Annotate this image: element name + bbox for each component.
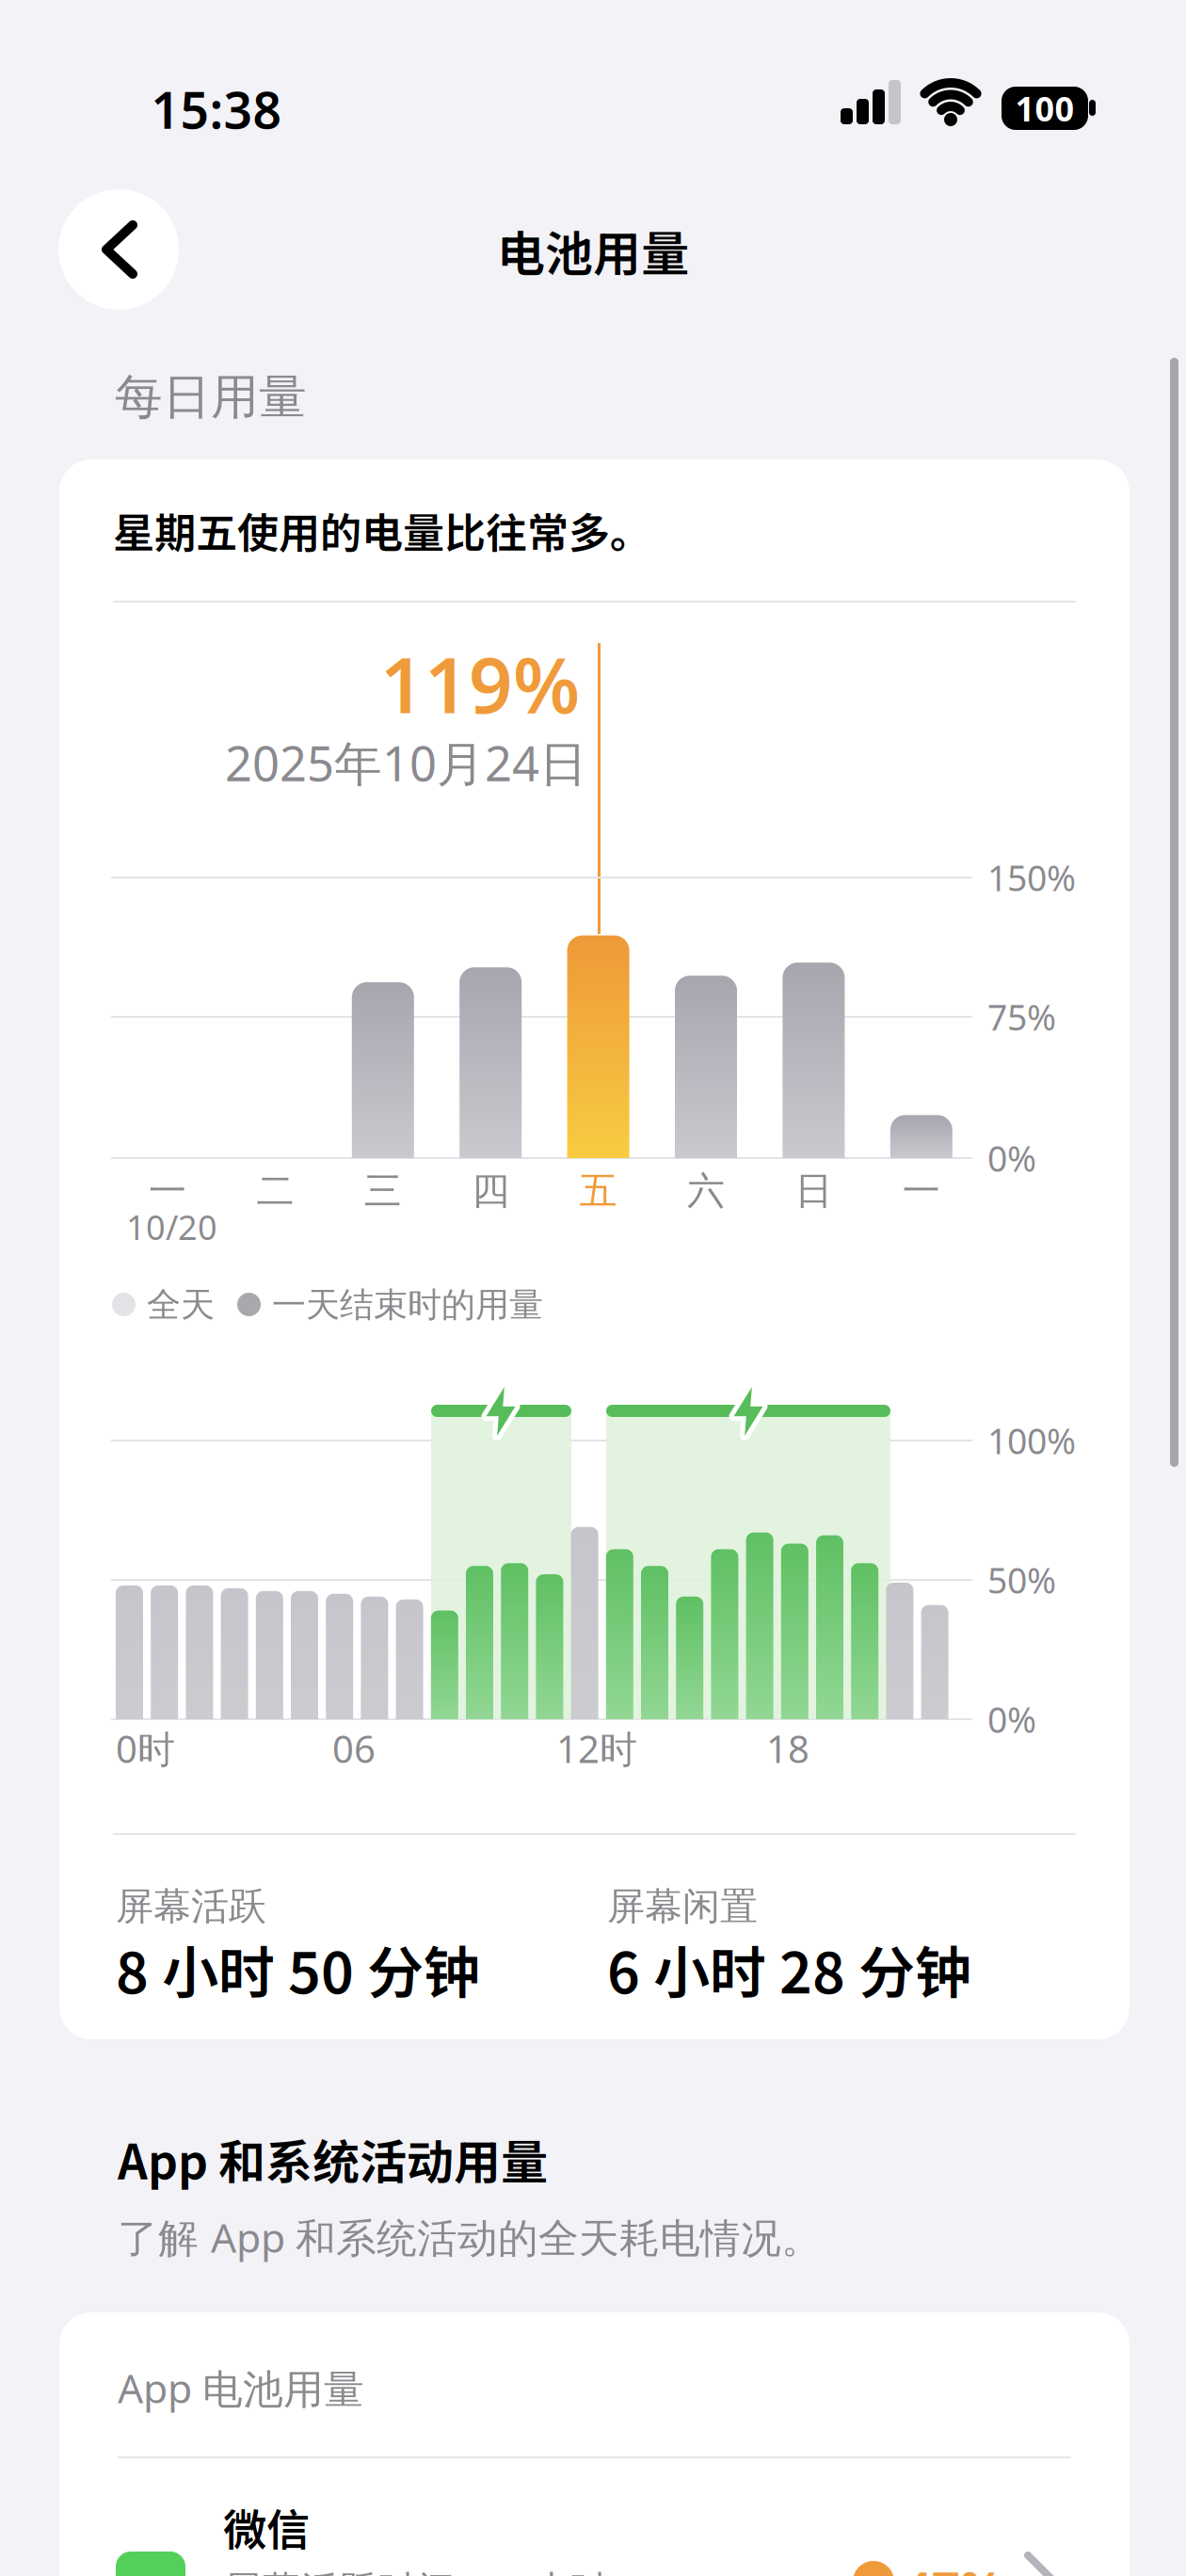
staticText: 18 bbox=[766, 1723, 809, 1773]
staticText: App 和系统活动用量 bbox=[118, 2125, 548, 2193]
staticText: 15:38 bbox=[151, 76, 282, 143]
staticText: 50% bbox=[987, 1557, 1056, 1603]
staticText: 每日用量 bbox=[115, 368, 307, 427]
staticText: 0时 bbox=[116, 1723, 175, 1773]
staticText: 8 小时 50 分钟 bbox=[116, 1928, 480, 2010]
staticText: 0% bbox=[987, 1696, 1036, 1743]
staticText: 三 bbox=[364, 1168, 402, 1214]
staticText: 2025年10月24日 bbox=[225, 731, 587, 794]
staticText: 微信 bbox=[223, 2496, 310, 2558]
staticText: 6 小时 28 分钟 bbox=[607, 1928, 971, 2010]
staticText: 六 bbox=[687, 1168, 725, 1214]
staticText: 75% bbox=[987, 993, 1056, 1040]
staticText: 日 bbox=[795, 1168, 832, 1214]
staticText: 屏幕活跃 bbox=[116, 1883, 266, 1930]
staticText: 12时 bbox=[556, 1723, 637, 1773]
staticText: 二 bbox=[256, 1168, 294, 1214]
staticText: 10/20 bbox=[126, 1204, 217, 1249]
staticText: 0% bbox=[987, 1135, 1036, 1181]
staticText: 四 bbox=[472, 1168, 509, 1214]
staticText: 150% bbox=[987, 854, 1076, 901]
staticText: 47% bbox=[904, 2556, 1004, 2576]
staticText: 100% bbox=[987, 1417, 1076, 1464]
staticText: 全天 bbox=[147, 1284, 215, 1326]
staticText: 119% bbox=[380, 633, 580, 734]
staticText: 屏幕活跃时间 6.1 小时 bbox=[223, 2563, 608, 2576]
staticText: 06 bbox=[332, 1723, 376, 1773]
staticText: 了解 App 和系统活动的全天耗电情况。 bbox=[118, 2210, 822, 2264]
staticText: App 电池用量 bbox=[118, 2361, 364, 2415]
staticText: 一 bbox=[149, 1168, 186, 1214]
staticText: 一 bbox=[902, 1168, 940, 1214]
button[interactable]: Back bbox=[0, 0, 1186, 2576]
staticText: 一天结束时的用量 bbox=[272, 1284, 543, 1326]
staticText: 屏幕闲置 bbox=[607, 1883, 758, 1930]
staticText: 100 bbox=[1015, 86, 1074, 131]
button[interactable]: 微信 bbox=[0, 0, 1186, 2576]
staticText: 五 bbox=[579, 1168, 617, 1214]
staticText: 星期五使用的电量比往常多。 bbox=[113, 500, 651, 560]
staticText: 电池用量 bbox=[497, 216, 689, 285]
